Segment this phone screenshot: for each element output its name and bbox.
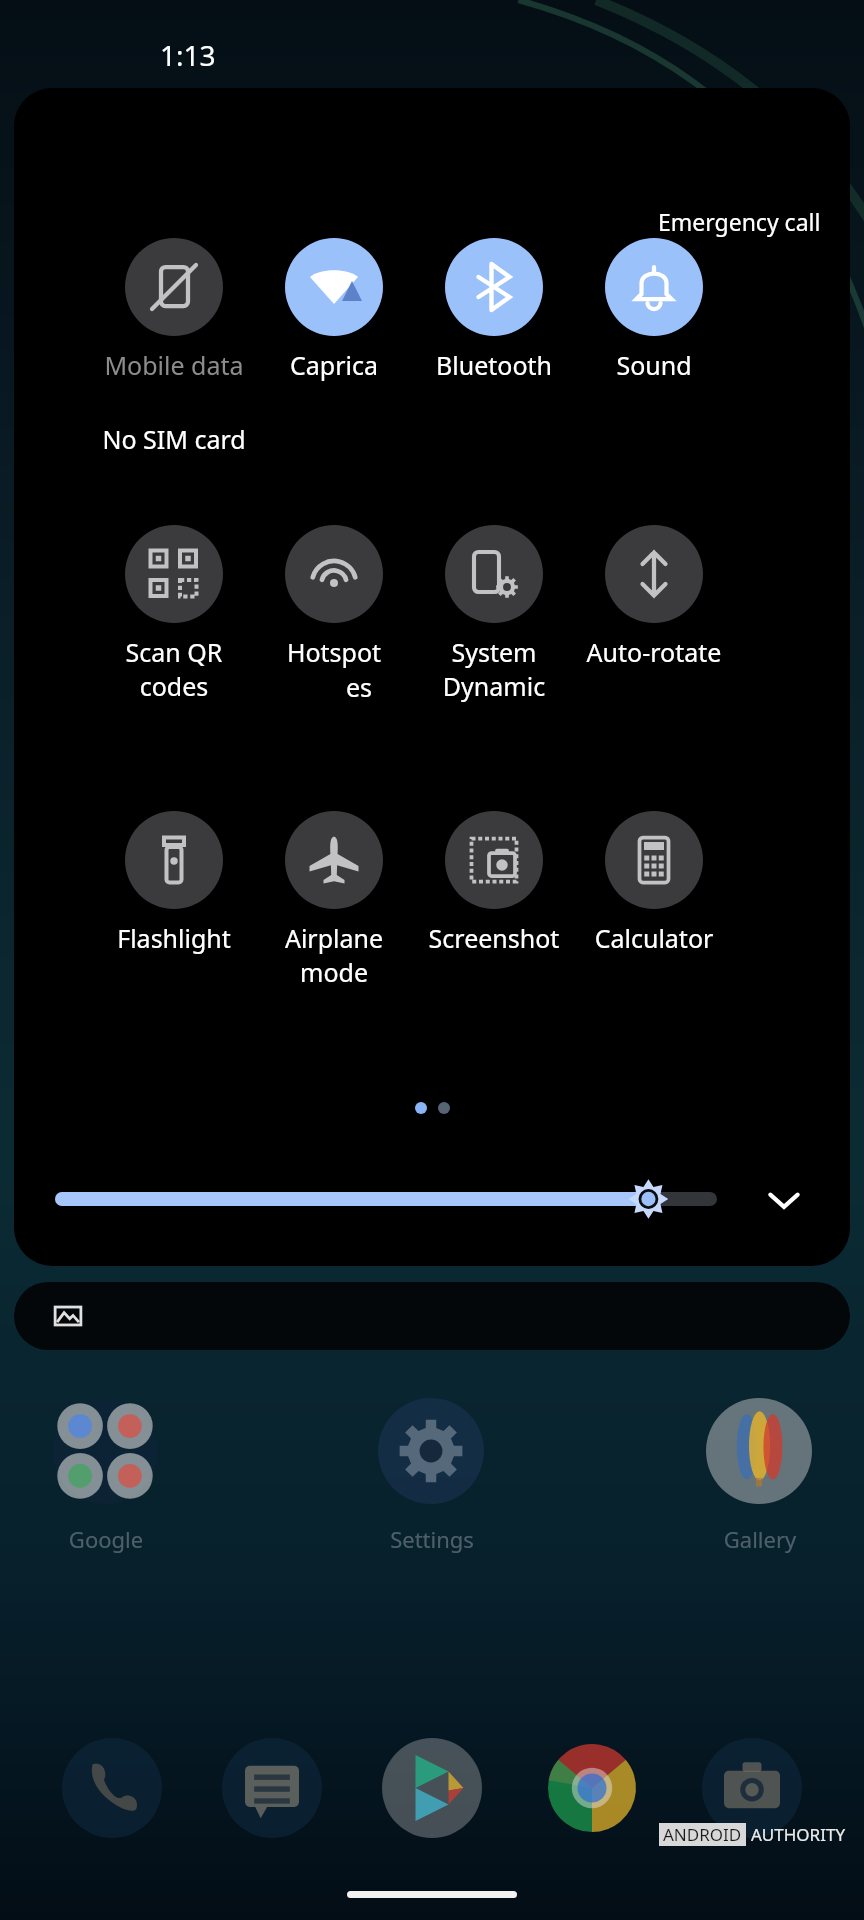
other: Hotspot	[285, 525, 383, 623]
staticText: Gallery	[704, 1524, 816, 1554]
button[interactable]: System Dynamic	[396, 525, 592, 703]
staticText: Flashlight	[76, 921, 272, 955]
other: Calculator	[605, 811, 703, 909]
other: Sound	[605, 238, 703, 336]
button[interactable]: Google folder	[52, 1398, 158, 1504]
button[interactable]: Airplane mode	[236, 811, 432, 989]
button[interactable]: Calculator	[556, 811, 752, 955]
staticText: Airplane mode	[236, 921, 432, 989]
staticText: Screenshot	[396, 921, 592, 955]
button[interactable]: Gallery app	[706, 1398, 812, 1504]
button[interactable]: Screenshot	[396, 811, 592, 955]
button[interactable]: Scan QR codes	[76, 525, 272, 703]
staticText: AUTHORITY	[751, 1823, 846, 1846]
staticText: Calculator	[556, 921, 752, 955]
button[interactable]: Sound	[556, 238, 752, 382]
staticText: Emergency call	[658, 206, 821, 237]
staticText: Mobile data	[76, 348, 272, 382]
staticText: Caprica	[236, 348, 432, 382]
staticText: Hotspot	[236, 635, 432, 669]
other: Screenshot	[445, 811, 543, 909]
button[interactable]: Chrome	[542, 1738, 642, 1838]
staticText: 1:13	[160, 36, 216, 74]
other: Mobile data	[125, 238, 223, 336]
other: Wi-Fi Caprica	[285, 238, 383, 336]
button[interactable]: Bluetooth	[396, 238, 592, 382]
button[interactable]: Play Store	[382, 1738, 482, 1838]
button[interactable]: Auto-rotate	[556, 525, 752, 669]
button[interactable]: Messages	[222, 1738, 322, 1838]
other: System Dynamic	[445, 525, 543, 623]
staticText: Google	[50, 1524, 162, 1554]
other: Airplane mode	[285, 811, 383, 909]
button[interactable]: Flashlight	[76, 811, 272, 955]
button[interactable]: Brightness	[48, 1166, 724, 1232]
other: Bluetooth	[445, 238, 543, 336]
button[interactable]: Wi-Fi Caprica	[236, 238, 432, 382]
staticText: es	[346, 670, 373, 704]
other: Scan QR codes	[125, 525, 223, 623]
staticText: Sound	[556, 348, 752, 382]
button[interactable]: Hotspot	[236, 525, 432, 669]
staticText: Settings	[376, 1524, 488, 1554]
button[interactable]: Collapse	[754, 1170, 814, 1230]
staticText: Bluetooth	[396, 348, 592, 382]
button[interactable]: Camera	[702, 1738, 802, 1838]
staticText: Scan QR codes	[76, 635, 272, 703]
button[interactable]: Settings app	[378, 1398, 484, 1504]
staticText: System Dynamic	[396, 635, 592, 703]
button[interactable]: Mobile data	[76, 238, 272, 382]
staticText: No SIM card	[56, 422, 292, 456]
button[interactable]: Edit tiles	[42, 1258, 114, 1266]
staticText: ANDROID	[663, 1823, 742, 1846]
other: Flashlight	[125, 811, 223, 909]
button[interactable]	[14, 1282, 850, 1350]
button[interactable]: Phone	[62, 1738, 162, 1838]
other: Auto-rotate	[605, 525, 703, 623]
staticText: Auto-rotate	[556, 635, 752, 669]
